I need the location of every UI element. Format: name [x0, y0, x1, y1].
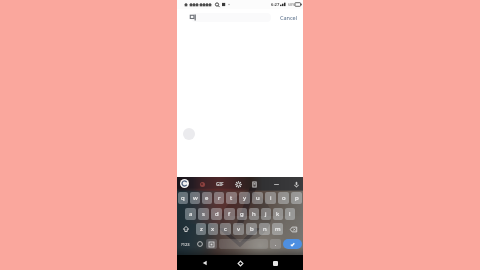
- button[interactable]: c: [220, 223, 231, 235]
- button[interactable]: u: [252, 192, 263, 204]
- button[interactable]: Home: [233, 256, 247, 270]
- button[interactable]: t: [226, 192, 237, 204]
- button[interactable]: Clipboard: [249, 179, 259, 189]
- button[interactable]: Google: [180, 179, 189, 188]
- staticText: p: [295, 194, 299, 202]
- staticText: s: [202, 210, 205, 218]
- button[interactable]: x: [208, 223, 218, 235]
- button[interactable]: y: [239, 192, 250, 204]
- staticText: 68%: [288, 2, 296, 7]
- button[interactable]: GIF: [215, 180, 225, 188]
- button[interactable]: d: [211, 208, 222, 220]
- staticText: i: [270, 194, 272, 202]
- staticText: y: [243, 194, 247, 202]
- staticText: ?123: [181, 242, 190, 247]
- button[interactable]: l: [285, 208, 295, 220]
- button[interactable]: Shift: [177, 223, 195, 235]
- staticText: GIF: [216, 181, 224, 187]
- staticText: m: [275, 225, 281, 233]
- button[interactable]: r: [214, 192, 224, 204]
- button[interactable]: Emoji: [194, 238, 205, 250]
- staticText: q: [181, 194, 185, 202]
- button[interactable]: f: [224, 208, 235, 220]
- staticText: j: [265, 210, 267, 218]
- button[interactable]: n: [259, 223, 270, 235]
- button[interactable]: b: [246, 223, 257, 235]
- staticText: Cancel: [280, 14, 298, 21]
- button[interactable]: Recents: [268, 256, 282, 270]
- staticText: g: [240, 210, 244, 218]
- staticText: h: [252, 210, 256, 218]
- staticText: e: [205, 194, 209, 202]
- staticText: l: [289, 210, 291, 218]
- button[interactable]: v: [233, 223, 244, 235]
- button[interactable]: m: [272, 223, 283, 235]
- staticText: x: [211, 225, 215, 233]
- staticText: d: [215, 210, 219, 218]
- button[interactable]: Backspace: [284, 223, 303, 235]
- button[interactable]: Space: [219, 239, 268, 249]
- staticText: n: [263, 225, 267, 233]
- staticText: z: [200, 225, 203, 233]
- staticText: w: [193, 194, 198, 202]
- button[interactable]: e: [202, 192, 212, 204]
- button[interactable]: q: [178, 192, 188, 204]
- button[interactable]: Keyboard settings: [291, 179, 301, 189]
- button[interactable]: .: [270, 239, 281, 249]
- button[interactable]: p: [291, 192, 302, 204]
- staticText: u: [256, 194, 260, 202]
- button[interactable]: h: [249, 208, 259, 220]
- button[interactable]: Sticker: [206, 239, 217, 249]
- staticText: b: [250, 225, 254, 233]
- staticText: c: [224, 225, 227, 233]
- button[interactable]: g: [237, 208, 247, 220]
- button[interactable]: Stickers: [197, 179, 207, 189]
- button[interactable]: i: [265, 192, 276, 204]
- button[interactable]: k: [273, 208, 283, 220]
- staticText: 6:27: [271, 2, 280, 8]
- button[interactable]: More options: [271, 179, 281, 189]
- button[interactable]: Cancel: [279, 12, 299, 23]
- button[interactable]: j: [261, 208, 271, 220]
- staticText: a: [189, 210, 193, 218]
- staticText: t: [230, 194, 233, 202]
- staticText: r: [218, 194, 221, 202]
- staticText: .: [275, 241, 277, 248]
- button[interactable]: o: [278, 192, 289, 204]
- button[interactable]: Symbols: [177, 238, 194, 250]
- button[interactable]: a: [185, 208, 196, 220]
- button[interactable]: s: [198, 208, 209, 220]
- staticText: k: [276, 210, 280, 218]
- staticText: v: [237, 225, 241, 233]
- button[interactable]: z: [196, 223, 206, 235]
- button[interactable]: Emoji settings: [233, 179, 243, 189]
- button[interactable]: Search: [189, 13, 198, 22]
- button[interactable]: w: [190, 192, 200, 204]
- button[interactable]: Send: [283, 239, 302, 249]
- staticText: f: [228, 210, 231, 218]
- staticText: o: [282, 194, 286, 202]
- button[interactable]: Back: [198, 256, 212, 270]
